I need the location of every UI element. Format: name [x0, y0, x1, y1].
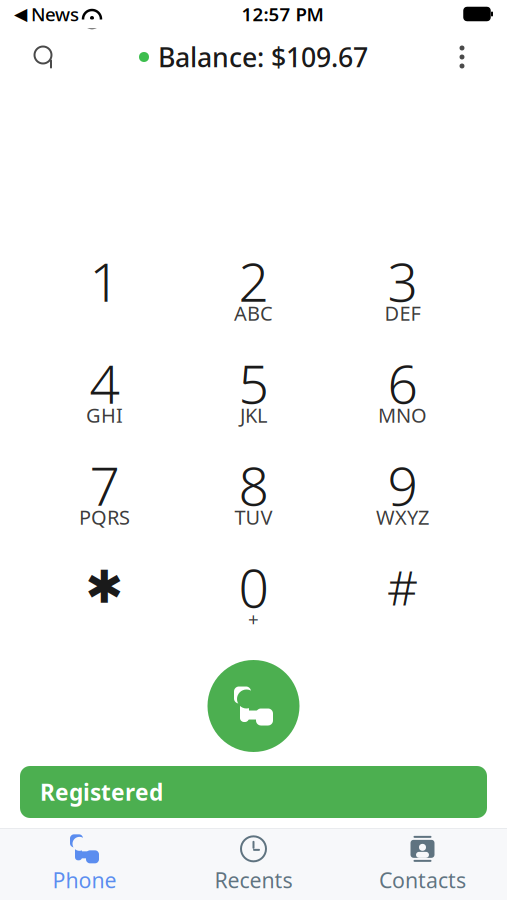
staticText: ✱ [85, 561, 123, 613]
button[interactable]: Search [22, 34, 68, 80]
staticText: + [248, 607, 259, 631]
staticText: 6 [387, 348, 417, 418]
button[interactable]: 7 [30, 458, 179, 530]
button[interactable]: Balance: $109.67 [133, 34, 374, 80]
button[interactable]: 2 [179, 254, 328, 326]
staticText: WXYZ [376, 504, 429, 530]
staticText: TUV [234, 504, 272, 530]
staticText: # [387, 555, 418, 619]
staticText: 3 [387, 246, 417, 316]
staticText: 5 [238, 348, 268, 418]
staticText: Recents [214, 866, 292, 894]
staticText [102, 300, 107, 326]
staticText: 0 [238, 552, 268, 622]
button[interactable]: 0 [179, 560, 328, 632]
staticText: 1 [89, 246, 119, 316]
staticText: JKL [240, 402, 267, 428]
button[interactable]: Phone [0, 828, 169, 900]
button[interactable]: Call [207, 660, 299, 752]
button[interactable]: 3 [328, 254, 477, 326]
staticText: 8 [238, 450, 268, 520]
staticText: 4 [89, 348, 119, 418]
staticText: DEF [384, 300, 420, 326]
button[interactable]: # [328, 560, 477, 632]
button[interactable]: 6 [328, 356, 477, 428]
button[interactable]: ✱ [30, 560, 179, 632]
staticText: GHI [86, 402, 123, 428]
button[interactable]: 4 [30, 356, 179, 428]
staticText: 12:57 PM [241, 2, 323, 26]
staticText: PQRS [79, 504, 130, 530]
button[interactable]: 9 [328, 458, 477, 530]
staticText: 9 [387, 450, 417, 520]
staticText: ◀ [14, 4, 27, 24]
staticText: 2 [238, 246, 268, 316]
staticText: Phone [52, 866, 116, 894]
button[interactable]: Recents [169, 828, 338, 900]
button[interactable]: 1 [30, 254, 179, 326]
button[interactable]: More options [439, 34, 485, 80]
staticText: News [31, 2, 79, 26]
staticText: Balance: $109.67 [158, 39, 368, 75]
button[interactable]: 8 [179, 458, 328, 530]
staticText: MNO [378, 402, 427, 428]
staticText: Registered [40, 777, 163, 807]
staticText: 7 [89, 450, 119, 520]
staticText: ABC [234, 300, 273, 326]
button[interactable]: Contacts [338, 828, 507, 900]
staticText: Contacts [379, 866, 466, 894]
button[interactable]: 5 [179, 356, 328, 428]
